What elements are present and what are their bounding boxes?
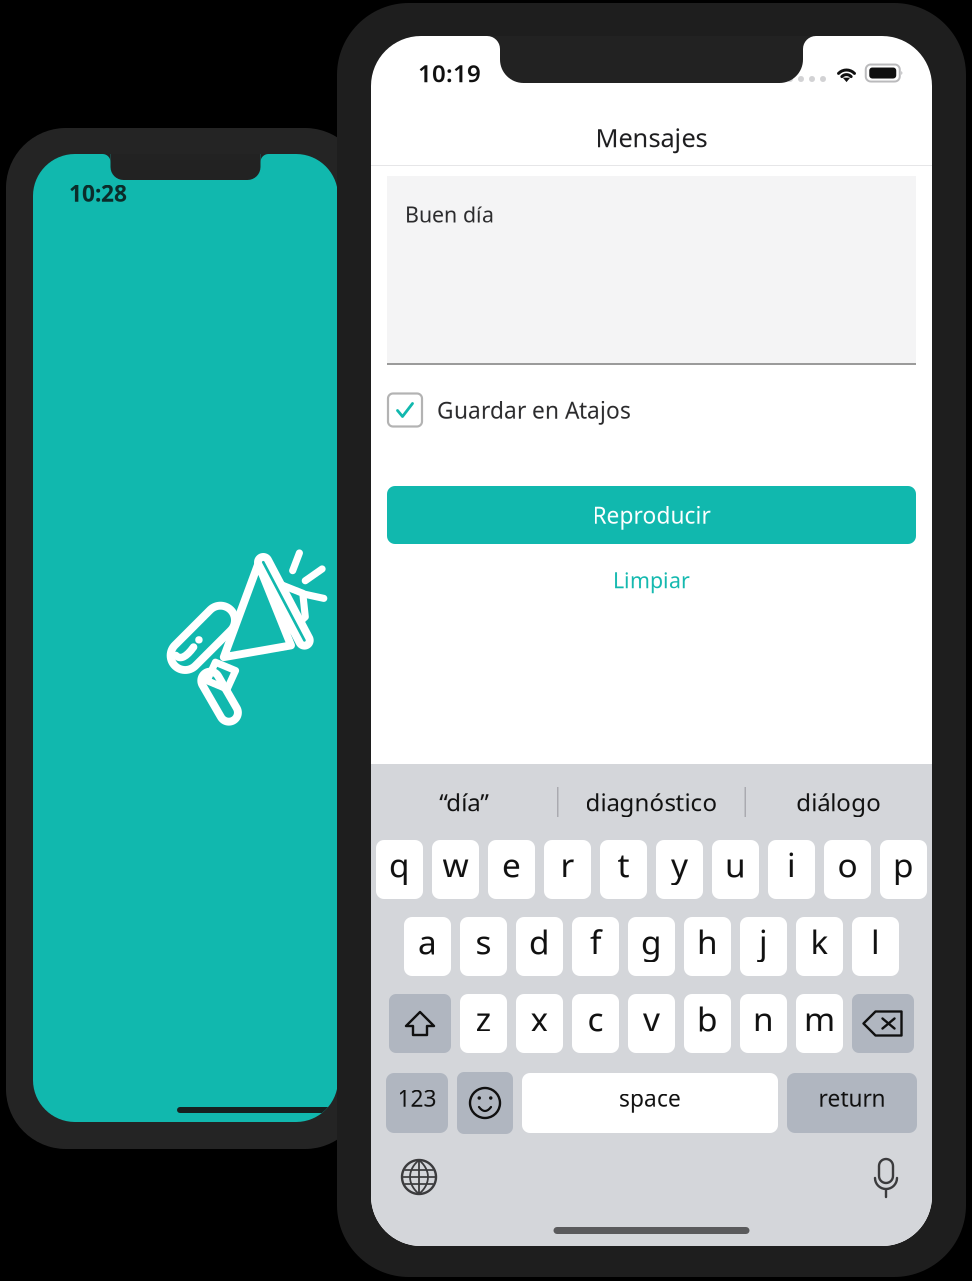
staticText: x xyxy=(530,996,548,1041)
staticText: q xyxy=(389,842,410,887)
staticText: j xyxy=(759,919,768,964)
staticText: m xyxy=(804,996,835,1041)
staticText: space xyxy=(619,1083,681,1113)
staticText: c xyxy=(587,996,603,1041)
staticText: 10:28 xyxy=(69,178,127,208)
staticText: i xyxy=(787,842,796,887)
button[interactable]: Change keyboard xyxy=(401,1159,437,1195)
button[interactable]: k xyxy=(796,917,843,976)
button[interactable]: w xyxy=(432,840,479,899)
staticText: diálogo xyxy=(796,786,881,818)
button[interactable]: “día” xyxy=(371,765,557,839)
staticText: p xyxy=(893,842,914,887)
staticText: “día” xyxy=(439,786,489,818)
staticText: s xyxy=(475,919,491,964)
button[interactable]: n xyxy=(740,994,787,1053)
button[interactable]: Delete xyxy=(852,994,914,1053)
button[interactable]: space xyxy=(522,1073,778,1133)
button[interactable]: f xyxy=(572,917,619,976)
staticText: f xyxy=(590,919,601,964)
staticText: g xyxy=(641,919,662,964)
button[interactable]: Dictation xyxy=(870,1156,902,1198)
staticText: return xyxy=(818,1083,885,1113)
staticText: d xyxy=(529,919,550,964)
button[interactable]: m xyxy=(796,994,843,1053)
staticText: k xyxy=(810,919,828,964)
button[interactable]: diálogo xyxy=(746,765,932,839)
button[interactable]: l xyxy=(852,917,899,976)
button[interactable]: Limpiar xyxy=(371,550,932,610)
staticText: diagnóstico xyxy=(585,786,717,818)
button[interactable]: h xyxy=(684,917,731,976)
staticText: n xyxy=(753,996,774,1041)
staticText: e xyxy=(502,842,521,887)
button[interactable]: Emoji xyxy=(457,1072,513,1134)
staticText: Buen día xyxy=(405,200,494,228)
staticText: l xyxy=(871,919,880,964)
button[interactable]: v xyxy=(628,994,675,1053)
staticText: b xyxy=(697,996,718,1041)
staticText: w xyxy=(442,842,468,887)
staticText: y xyxy=(671,842,688,887)
button[interactable]: e xyxy=(488,840,535,899)
staticText: r xyxy=(560,842,574,887)
staticText: o xyxy=(837,842,857,887)
staticText: Reproducir xyxy=(592,500,710,530)
button[interactable]: u xyxy=(712,840,759,899)
staticText: Guardar en Atajos xyxy=(437,395,631,425)
staticText: h xyxy=(697,919,718,964)
staticText: 10:19 xyxy=(418,57,481,89)
staticText: 123 xyxy=(397,1083,436,1113)
button[interactable]: a xyxy=(404,917,451,976)
button[interactable]: return xyxy=(787,1073,917,1133)
button[interactable]: y xyxy=(656,840,703,899)
staticText: Limpiar xyxy=(613,566,690,594)
button[interactable]: Reproducir xyxy=(387,486,916,544)
button[interactable]: z xyxy=(460,994,507,1053)
staticText: z xyxy=(475,996,491,1041)
staticText: Mensajes xyxy=(595,121,707,154)
button[interactable]: 123 xyxy=(386,1073,448,1133)
button[interactable]: q xyxy=(376,840,423,899)
button[interactable]: o xyxy=(824,840,871,899)
button[interactable]: g xyxy=(628,917,675,976)
button[interactable]: b xyxy=(684,994,731,1053)
staticText: t xyxy=(617,842,629,887)
staticText: v xyxy=(643,996,660,1041)
button[interactable]: Guardar en Atajos xyxy=(371,379,932,441)
button[interactable]: j xyxy=(740,917,787,976)
button[interactable]: i xyxy=(768,840,815,899)
button[interactable]: d xyxy=(516,917,563,976)
button[interactable]: p xyxy=(880,840,927,899)
button[interactable]: x xyxy=(516,994,563,1053)
button[interactable]: t xyxy=(600,840,647,899)
staticText: a xyxy=(418,919,437,964)
button[interactable]: s xyxy=(460,917,507,976)
button[interactable]: diagnóstico xyxy=(558,765,745,839)
button[interactable]: Shift xyxy=(389,994,451,1053)
staticText: u xyxy=(725,842,746,887)
button[interactable]: c xyxy=(572,994,619,1053)
button[interactable]: r xyxy=(544,840,591,899)
